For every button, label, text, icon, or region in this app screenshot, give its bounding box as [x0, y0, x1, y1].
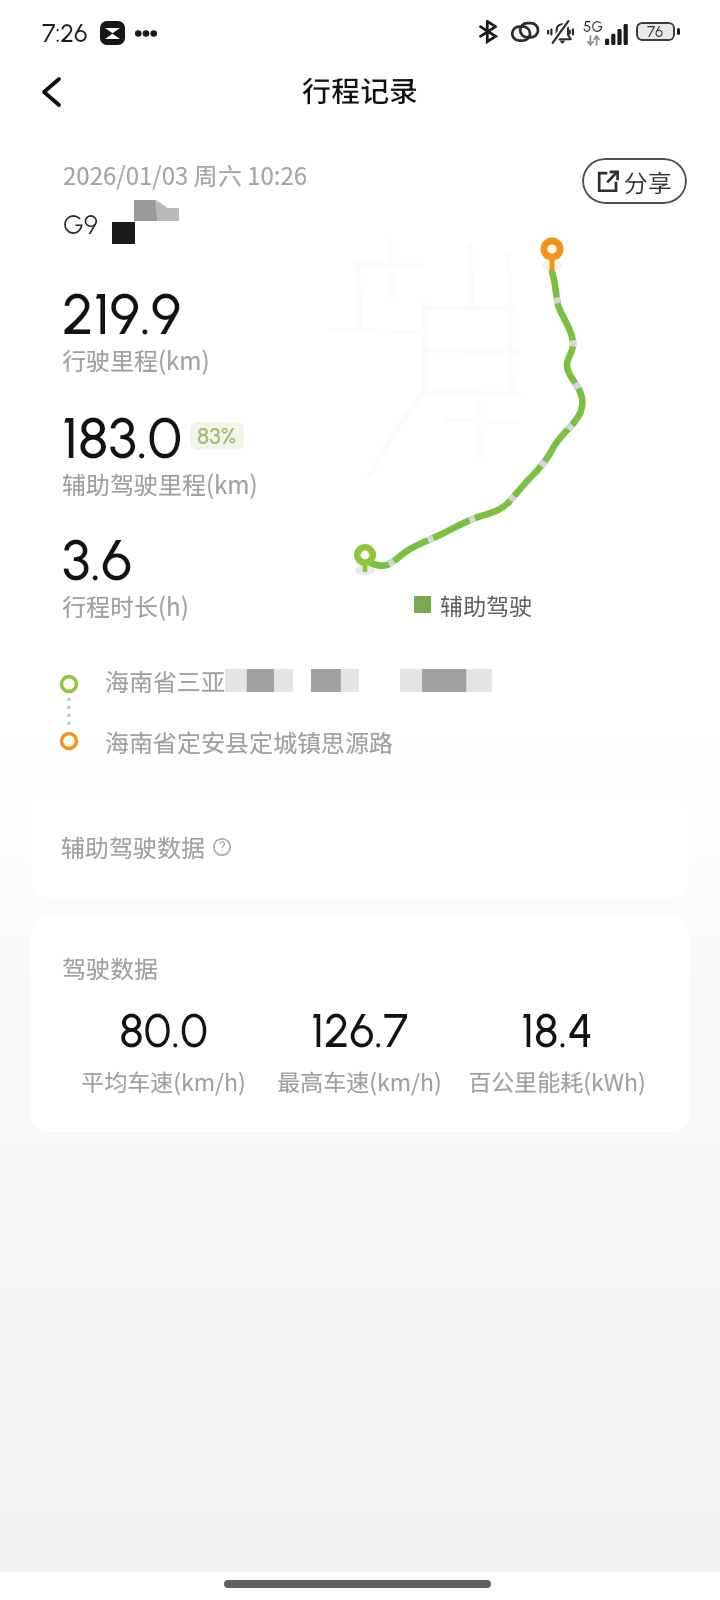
- button[interactable]: Back: [25, 68, 77, 116]
- staticText: 183.0: [62, 404, 182, 472]
- staticText: 辅助驾驶数据: [61, 829, 205, 864]
- staticText: 行驶里程(km): [62, 342, 210, 377]
- staticText: 平均车速(km/h): [81, 1064, 246, 1097]
- button[interactable]: 分享: [582, 158, 687, 204]
- staticText: 海南省三亚: [105, 663, 225, 698]
- staticText: 2026/01/03 周六 10:26: [63, 157, 308, 192]
- staticText: 219.9: [62, 280, 182, 348]
- staticText: ?: [219, 839, 226, 855]
- staticText: 辅助驾驶: [440, 588, 532, 621]
- staticText: 3.6: [62, 526, 133, 594]
- staticText: 辅助驾驶里程(km): [62, 466, 258, 501]
- staticText: 最高车速(km/h): [277, 1064, 442, 1097]
- staticText: 7:26: [42, 18, 88, 48]
- staticText: G9: [63, 208, 98, 240]
- staticText: 海南省定安县定城镇思源路: [105, 724, 393, 759]
- staticText: 行程时长(h): [62, 588, 189, 623]
- staticText: 80.0: [119, 1003, 208, 1058]
- staticText: 83%: [197, 422, 237, 450]
- staticText: 分享: [624, 164, 672, 199]
- staticText: 行程记录: [302, 68, 419, 110]
- button[interactable]: 辅助驾驶数据: [31, 795, 689, 898]
- staticText: 18.4: [521, 1003, 593, 1058]
- staticText: 百公里能耗(kWh): [468, 1064, 646, 1097]
- staticText: 5G: [583, 18, 603, 36]
- staticText: 驾驶数据: [62, 950, 158, 985]
- staticText: 76: [647, 23, 664, 41]
- staticText: 126.7: [311, 1003, 408, 1058]
